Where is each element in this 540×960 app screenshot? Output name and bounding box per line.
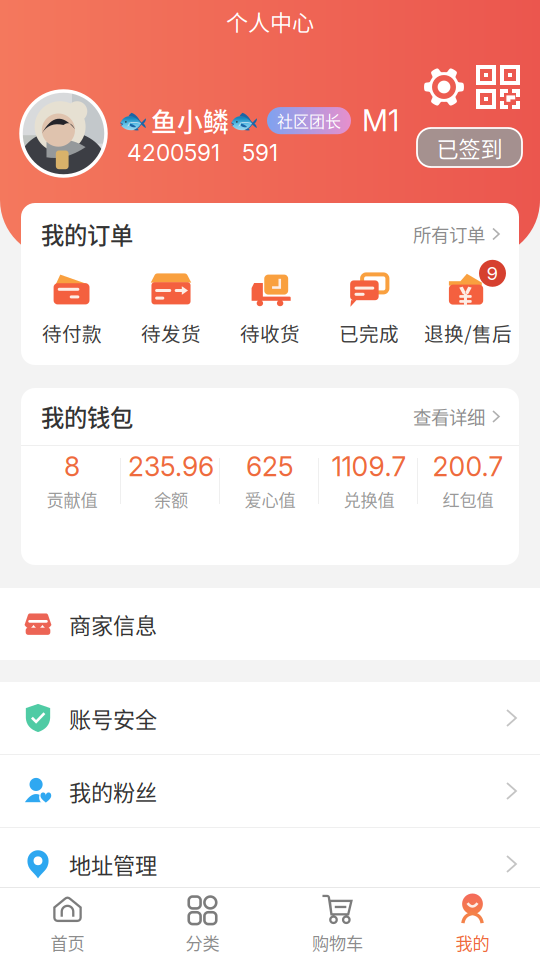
button[interactable]: 9	[418, 265, 517, 351]
staticText: 我的	[455, 930, 489, 955]
staticText: 我的订单	[41, 217, 133, 251]
staticText: 待发货	[141, 319, 201, 347]
button[interactable]: 已签到	[417, 128, 522, 167]
staticText: 社区团长	[277, 109, 341, 132]
button[interactable]: 账号安全	[0, 682, 540, 754]
staticText: 退换/售后	[424, 319, 512, 347]
staticText: 235.96	[128, 450, 214, 483]
staticText: 爱心值	[244, 487, 295, 512]
button[interactable]: 待收货	[220, 265, 319, 351]
staticText: 9	[486, 262, 498, 285]
staticText: 红包值	[442, 487, 493, 512]
staticText: 鱼小鳞	[151, 102, 229, 139]
button[interactable]: 8	[22, 446, 121, 516]
staticText: 个人中心	[226, 5, 314, 37]
staticText: 4200591	[127, 139, 220, 166]
button[interactable]: 200.7	[418, 446, 517, 516]
staticText: 地址管理	[69, 848, 157, 880]
button[interactable]: 我的粉丝	[0, 755, 540, 827]
button[interactable]: 设置	[423, 66, 465, 108]
button[interactable]: 分类	[135, 888, 270, 960]
staticText: 已完成	[339, 319, 399, 347]
staticText: 所有订单	[413, 221, 485, 247]
button[interactable]: 首页	[0, 888, 135, 960]
button[interactable]: 商家信息	[0, 588, 540, 660]
staticText: 首页	[50, 930, 84, 955]
button[interactable]: 购物车	[270, 888, 405, 960]
button[interactable]: 我的	[405, 888, 540, 960]
staticText: 已签到	[436, 131, 502, 163]
staticText: 商家信息	[69, 608, 157, 640]
staticText: 购物车	[312, 930, 363, 955]
staticText: 我的粉丝	[69, 775, 157, 807]
staticText: 🐟	[118, 107, 148, 135]
staticText: 🐟	[229, 107, 259, 135]
staticText: 8	[64, 450, 80, 483]
staticText: 贡献值	[46, 487, 97, 512]
staticText: 待付款	[42, 319, 102, 347]
button[interactable]: 235.96	[121, 446, 220, 516]
staticText: 查看详细	[413, 403, 485, 430]
staticText: 余额	[154, 487, 188, 512]
button[interactable]: 待付款	[22, 265, 121, 351]
staticText: 待收货	[240, 319, 300, 347]
staticText: 兑换值	[343, 487, 394, 512]
staticText: 账号安全	[69, 702, 157, 734]
staticText: 我的钱包	[41, 400, 133, 433]
button[interactable]: 待发货	[121, 265, 220, 351]
staticText: 1109.7	[331, 450, 406, 483]
button[interactable]: 地址管理	[0, 828, 540, 900]
button[interactable]: 我的钱包	[21, 388, 519, 445]
button[interactable]: 625	[220, 446, 319, 516]
staticText: 591	[242, 139, 278, 166]
staticText: 200.7	[432, 450, 503, 483]
staticText: 分类	[185, 930, 219, 955]
staticText: M1	[362, 103, 399, 138]
button[interactable]: 我的订单	[21, 203, 519, 265]
button[interactable]: 扫一扫	[476, 65, 520, 109]
button[interactable]: 已完成	[319, 265, 418, 351]
button[interactable]: 1109.7	[319, 446, 418, 516]
staticText: 625	[246, 450, 294, 483]
